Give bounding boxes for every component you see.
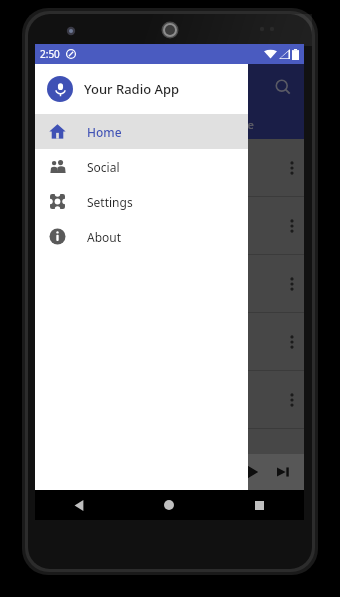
button[interactable]: Play: [236, 457, 266, 487]
button[interactable]: Back: [35, 490, 124, 520]
button[interactable]: About: [35, 219, 248, 254]
button[interactable]: More options: [35, 371, 304, 429]
button[interactable]: More options: [280, 330, 304, 354]
button[interactable]: Settings: [35, 184, 248, 219]
button[interactable]: Social: [35, 149, 248, 184]
button[interactable]: Favorite: [211, 117, 254, 132]
staticText: About: [87, 229, 122, 245]
button[interactable]: Recents: [214, 490, 304, 520]
button[interactable]: More options: [280, 388, 304, 412]
staticText: Settings: [87, 194, 133, 210]
button[interactable]: Home: [124, 490, 214, 520]
button[interactable]: More options: [35, 139, 304, 197]
button[interactable]: More options: [280, 272, 304, 296]
button[interactable]: More options: [35, 255, 304, 313]
button[interactable]: More options: [280, 156, 304, 180]
button[interactable]: More options: [35, 197, 304, 255]
button[interactable]: More options: [280, 214, 304, 238]
button[interactable]: Next: [268, 457, 298, 487]
staticText: Favorite: [211, 117, 254, 132]
button[interactable]: More options: [35, 313, 304, 371]
staticText: Social: [87, 159, 120, 175]
staticText: Your Radio App: [84, 80, 180, 98]
button[interactable]: Search: [266, 70, 300, 104]
staticText: 2:50: [40, 47, 60, 61]
button[interactable]: Home: [35, 114, 248, 149]
staticText: Home: [87, 124, 122, 140]
